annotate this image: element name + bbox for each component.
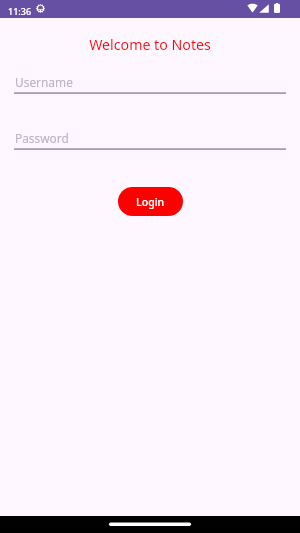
- staticText: Welcome to Notes: [89, 35, 211, 54]
- staticText: Password: [15, 130, 69, 146]
- button[interactable]: Password: [14, 126, 286, 152]
- staticText: Login: [136, 195, 165, 209]
- staticText: Username: [15, 74, 73, 90]
- other: Battery: [274, 3, 280, 13]
- staticText: 11:36: [8, 5, 32, 17]
- other: System settings: [36, 4, 45, 13]
- other: Mobile signal: [259, 4, 269, 13]
- button[interactable]: Username: [14, 70, 286, 96]
- button[interactable]: Login: [118, 187, 183, 216]
- other: Wi-Fi: [247, 4, 258, 12]
